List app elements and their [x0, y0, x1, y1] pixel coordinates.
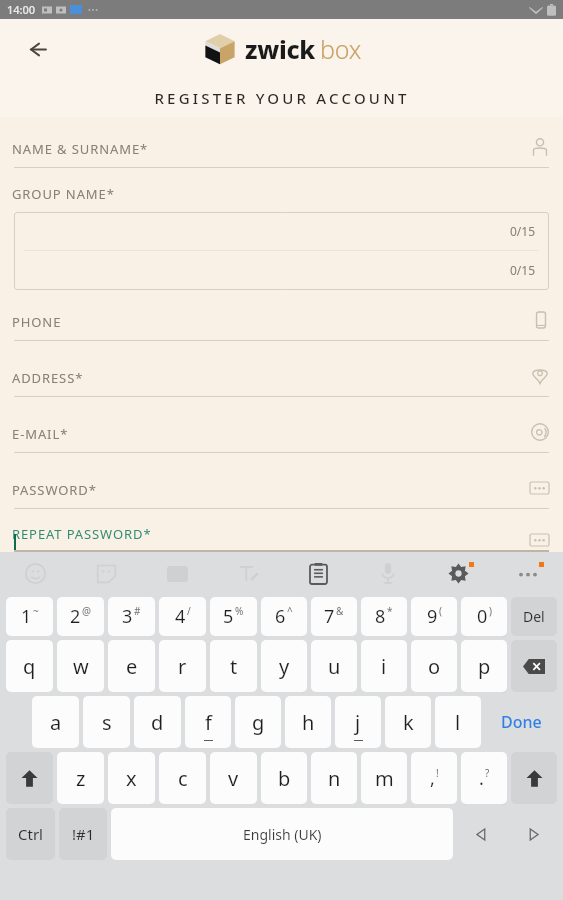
button[interactable]: PASSWORD*: [0, 475, 563, 509]
button[interactable]: 2: [57, 597, 104, 636]
staticText: a: [50, 709, 62, 736]
button[interactable]: n: [311, 752, 357, 804]
button[interactable]: ADDRESS*: [0, 363, 563, 397]
staticText: 7: [324, 604, 335, 629]
staticText: 6: [275, 604, 286, 629]
button[interactable]: t: [210, 640, 257, 692]
button[interactable]: p: [461, 640, 507, 692]
button[interactable]: NAME & SURNAME*: [0, 134, 563, 168]
staticText: &: [336, 604, 344, 618]
button[interactable]: a: [32, 696, 79, 748]
button[interactable]: k: [385, 696, 431, 748]
staticText: Ctrl: [18, 824, 43, 844]
staticText: PHONE: [12, 313, 62, 331]
button[interactable]: 0: [461, 597, 507, 636]
button[interactable]: Shift: [511, 752, 557, 804]
button[interactable]: f: [185, 696, 231, 748]
button[interactable]: Ctrl: [6, 808, 55, 860]
staticText: ?: [485, 766, 490, 780]
button[interactable]: y: [261, 640, 307, 692]
button[interactable]: E-MAIL*: [0, 419, 563, 453]
staticText: o: [428, 653, 441, 680]
button[interactable]: Backspace: [511, 640, 557, 692]
staticText: zwick: [245, 32, 315, 66]
button[interactable]: 4: [159, 597, 206, 636]
button[interactable]: Move cursor right: [509, 808, 557, 860]
button[interactable]: x: [108, 752, 155, 804]
button[interactable]: Shift: [6, 752, 53, 804]
staticText: !: [436, 766, 439, 780]
button[interactable]: j: [335, 696, 381, 748]
button[interactable]: 0/15: [14, 251, 549, 289]
button[interactable]: Move cursor left: [457, 808, 505, 860]
staticText: 8: [375, 604, 386, 629]
button[interactable]: 6: [261, 597, 307, 636]
button[interactable]: Del: [511, 597, 557, 636]
staticText: .: [479, 766, 484, 791]
staticText: c: [178, 765, 188, 792]
staticText: PASSWORD*: [12, 481, 97, 499]
button[interactable]: e: [108, 640, 155, 692]
button[interactable]: PHONE: [0, 307, 563, 341]
button[interactable]: Settings: [423, 552, 493, 595]
staticText: x: [126, 765, 137, 792]
staticText: 2: [70, 604, 81, 629]
button[interactable]: !#1: [59, 808, 107, 860]
staticText: q: [23, 653, 36, 680]
staticText: p: [478, 653, 491, 680]
staticText: i: [381, 653, 387, 680]
staticText: k: [403, 709, 414, 736]
button[interactable]: v: [210, 752, 257, 804]
staticText: v: [228, 765, 239, 792]
staticText: h: [302, 709, 315, 736]
button[interactable]: q: [6, 640, 53, 692]
button[interactable]: GIF: [142, 552, 213, 595]
button[interactable]: Clipboard: [283, 552, 353, 595]
staticText: l: [455, 709, 461, 736]
button[interactable]: s: [83, 696, 130, 748]
staticText: w: [73, 653, 89, 680]
button[interactable]: h: [285, 696, 331, 748]
button[interactable]: m: [361, 752, 407, 804]
staticText: REPEAT PASSWORD*: [12, 525, 152, 543]
staticText: !#1: [72, 824, 95, 844]
button[interactable]: 9: [411, 597, 457, 636]
button[interactable]: w: [57, 640, 104, 692]
button[interactable]: 3: [108, 597, 155, 636]
button[interactable]: English (UK): [111, 808, 453, 860]
staticText: 3: [122, 604, 133, 629]
button[interactable]: c: [159, 752, 206, 804]
button[interactable]: l: [435, 696, 481, 748]
staticText: 0: [477, 604, 488, 629]
staticText: REGISTER YOUR ACCOUNT: [154, 88, 410, 108]
button[interactable]: 8: [361, 597, 407, 636]
button[interactable]: ,: [411, 752, 457, 804]
staticText: 0/15: [510, 223, 536, 239]
button[interactable]: z: [57, 752, 104, 804]
button[interactable]: 1: [6, 597, 53, 636]
button[interactable]: b: [261, 752, 307, 804]
button[interactable]: Back: [16, 29, 56, 69]
button[interactable]: 7: [311, 597, 357, 636]
button[interactable]: u: [311, 640, 357, 692]
staticText: ,: [430, 766, 435, 791]
button[interactable]: 5: [210, 597, 257, 636]
button[interactable]: Done: [485, 696, 557, 748]
button[interactable]: REPEAT PASSWORD*: [0, 525, 563, 552]
button[interactable]: 0/15: [14, 212, 549, 250]
button[interactable]: g: [235, 696, 281, 748]
staticText: 1: [21, 604, 32, 629]
staticText: b: [278, 765, 291, 792]
button[interactable]: r: [159, 640, 206, 692]
staticText: f: [205, 709, 212, 736]
staticText: *: [387, 604, 393, 618]
button[interactable]: d: [134, 696, 181, 748]
button[interactable]: o: [411, 640, 457, 692]
button[interactable]: i: [361, 640, 407, 692]
button[interactable]: More: [493, 552, 563, 595]
button[interactable]: .: [461, 752, 507, 804]
